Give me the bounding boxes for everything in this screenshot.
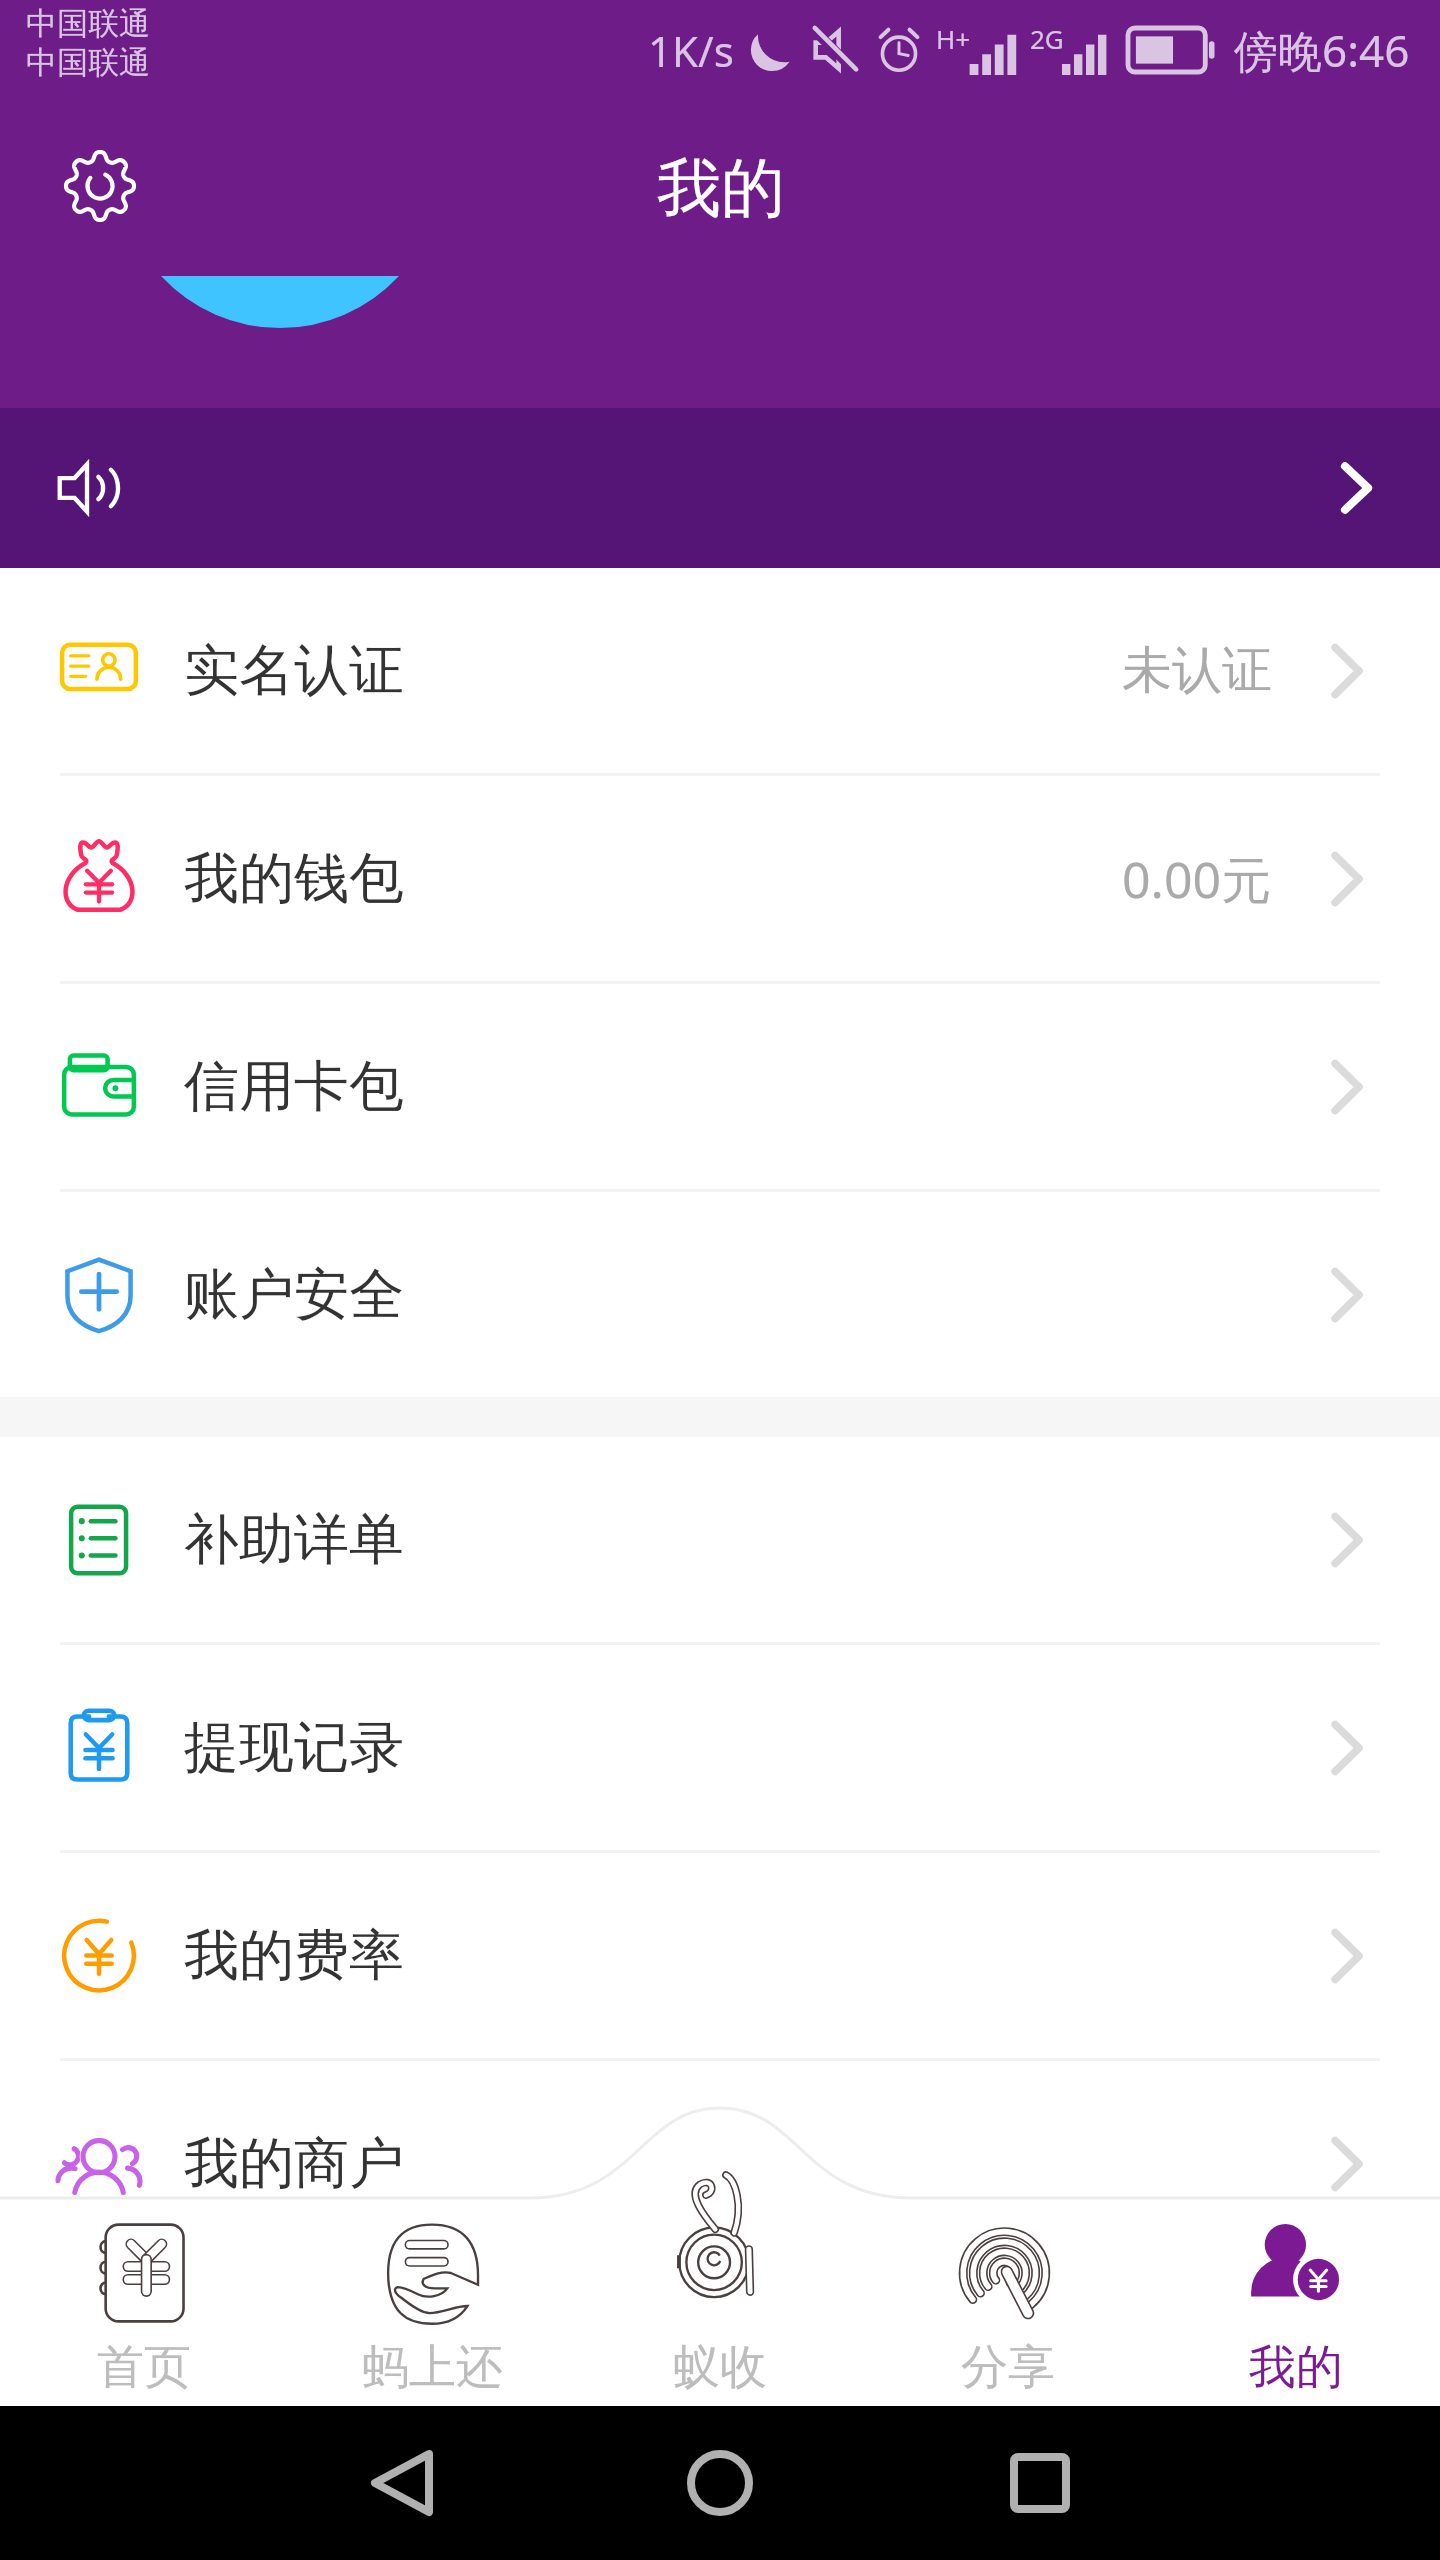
button[interactable]: 我的 [1152, 2204, 1440, 2502]
staticText: 提现记录 [184, 1713, 404, 1782]
staticText: 分享 [961, 2338, 1055, 2397]
staticText: 1K/s [648, 22, 734, 79]
button[interactable]: Recents [975, 2418, 1105, 2548]
staticText: 0.00元 [1122, 845, 1272, 913]
button[interactable]: 分享 [864, 2204, 1152, 2502]
staticText: 2G [1030, 21, 1064, 56]
staticText: 我的 [657, 148, 785, 229]
staticText: 中国联通 [26, 4, 150, 43]
button[interactable]: 蚁收 [576, 2204, 864, 2502]
staticText: 蚁收 [673, 2338, 767, 2397]
staticText: 未认证 [1122, 639, 1272, 702]
staticText: H+ [936, 21, 971, 56]
button[interactable]: 实名认证 [0, 568, 1440, 773]
button[interactable]: Announcement [0, 408, 1440, 568]
staticText: 我的费率 [184, 1921, 404, 1990]
button[interactable]: 我的钱包 [0, 776, 1440, 981]
staticText: 补助详单 [184, 1505, 404, 1574]
staticText: 实名认证 [184, 636, 404, 705]
staticText: 蚂上还 [362, 2338, 503, 2397]
staticText: 傍晚6:46 [1234, 20, 1410, 80]
staticText: 我的钱包 [184, 844, 404, 913]
button[interactable]: 蚂上还 [288, 2204, 576, 2502]
staticText: 账户安全 [184, 1260, 404, 1329]
button[interactable]: 账户安全 [0, 1192, 1440, 1397]
staticText: 我的商户 [184, 2129, 404, 2198]
staticText: 首页 [97, 2338, 191, 2397]
button[interactable]: 提现记录 [0, 1645, 1440, 1850]
staticText: 我的 [1249, 2338, 1343, 2397]
button[interactable]: 补助详单 [0, 1437, 1440, 1642]
button[interactable]: Profile photo [160, 240, 400, 332]
staticText: 信用卡包 [184, 1052, 404, 1121]
button[interactable]: Settings [30, 116, 170, 256]
button[interactable]: 信用卡包 [0, 984, 1440, 1189]
staticText: 中国联通 [26, 43, 150, 82]
button[interactable]: Back [335, 2418, 465, 2548]
button[interactable]: 我的商户 [0, 2061, 1440, 2266]
button[interactable]: 我的费率 [0, 1853, 1440, 2058]
button[interactable]: 首页 [0, 2204, 288, 2502]
button[interactable]: Home [655, 2418, 785, 2548]
